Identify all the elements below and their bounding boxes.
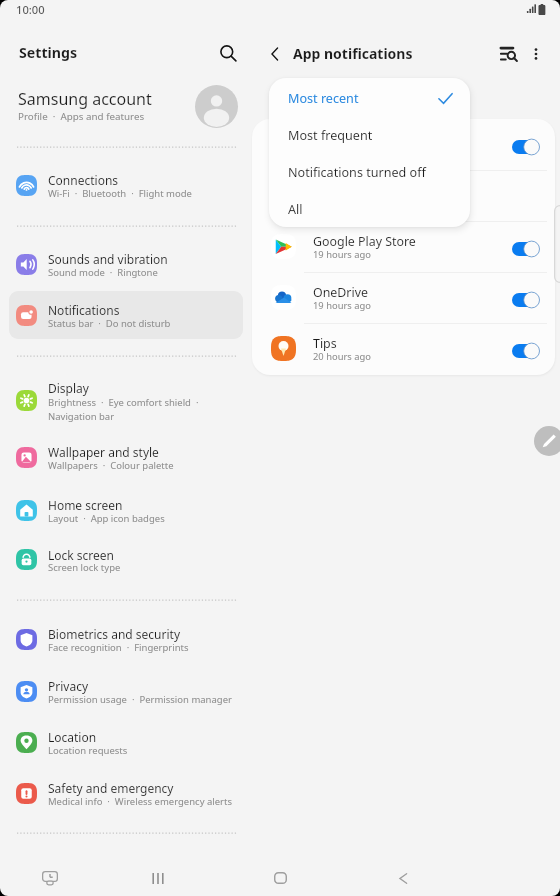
- staticText: Samsung account: [18, 88, 152, 110]
- button[interactable]: [9, 769, 243, 817]
- button[interactable]: [9, 433, 243, 481]
- button[interactable]: Camera: [252, 119, 555, 170]
- staticText: Face recognition · Fingerprints: [48, 641, 189, 654]
- staticText: Biometrics and security: [48, 626, 181, 642]
- staticText: All: [288, 201, 303, 218]
- button[interactable]: [9, 291, 243, 339]
- staticText: 10:00: [16, 2, 45, 17]
- button[interactable]: Toggle notifications: [512, 139, 540, 155]
- button[interactable]: [9, 718, 243, 766]
- button[interactable]: Toggle notifications: [512, 292, 540, 308]
- button[interactable]: [9, 536, 243, 584]
- staticText: Most recent: [288, 90, 359, 107]
- staticText: Connections: [48, 172, 119, 188]
- button[interactable]: Menu: [138, 858, 178, 896]
- staticText: Brightness · Eye comfort shield · Naviga…: [48, 396, 199, 423]
- button[interactable]: [9, 486, 243, 534]
- button[interactable]: [9, 615, 243, 663]
- button[interactable]: Messages: [252, 170, 555, 221]
- staticText: Layout · App icon badges: [48, 512, 165, 525]
- staticText: Notifications: [48, 302, 120, 318]
- staticText: Google Play Store: [313, 233, 416, 250]
- staticText: Medical info · Wireless emergency alerts: [48, 795, 233, 808]
- button[interactable]: Home: [260, 858, 300, 896]
- staticText: Privacy: [48, 678, 89, 694]
- button[interactable]: Most frequent: [269, 117, 470, 154]
- button[interactable]: [9, 379, 243, 435]
- staticText: 19 hours ago: [313, 248, 372, 261]
- button[interactable]: Back: [258, 37, 292, 71]
- staticText: Location requests: [48, 744, 128, 757]
- staticText: Status bar · Do not disturb: [48, 317, 171, 330]
- button[interactable]: Toggle notifications: [512, 343, 540, 359]
- staticText: Camera: [313, 131, 359, 148]
- staticText: Location: [48, 729, 97, 745]
- staticText: Lock screen: [48, 547, 115, 563]
- staticText: Sounds and vibration: [48, 251, 168, 267]
- staticText: OneDrive: [313, 284, 368, 301]
- button[interactable]: OneDrive: [252, 272, 555, 323]
- staticText: Wi-Fi · Bluetooth · Flight mode: [48, 187, 192, 200]
- button[interactable]: Recents: [30, 858, 70, 896]
- staticText: Home screen: [48, 497, 123, 513]
- staticText: 19 hours ago: [313, 299, 372, 312]
- staticText: Notifications turned off: [288, 164, 426, 181]
- staticText: App notifications: [293, 44, 413, 63]
- button[interactable]: Samsung account: [0, 82, 253, 132]
- staticText: Tips: [313, 335, 337, 352]
- button[interactable]: [9, 240, 243, 288]
- staticText: Screen lock type: [48, 561, 121, 574]
- button[interactable]: Notifications turned off: [269, 154, 470, 191]
- button[interactable]: Search settings: [492, 37, 526, 71]
- button[interactable]: Search: [210, 35, 246, 71]
- staticText: Settings: [19, 43, 78, 62]
- button[interactable]: Back: [383, 858, 423, 896]
- button[interactable]: Tips: [252, 323, 555, 374]
- button[interactable]: Most recent: [269, 80, 470, 117]
- button[interactable]: All: [269, 191, 470, 227]
- button[interactable]: Google Play Store: [252, 221, 555, 272]
- button[interactable]: [9, 667, 243, 715]
- button[interactable]: More options: [519, 37, 553, 71]
- staticText: Profile · Apps and features: [18, 110, 145, 123]
- staticText: Most frequent: [288, 127, 373, 144]
- button[interactable]: [9, 161, 243, 209]
- button[interactable]: Edit: [534, 426, 560, 456]
- staticText: Display: [48, 380, 89, 396]
- staticText: Sound mode · Ringtone: [48, 266, 158, 279]
- staticText: Permission usage · Permission manager: [48, 693, 232, 706]
- staticText: 20 hours ago: [313, 350, 372, 363]
- button[interactable]: Toggle notifications: [512, 241, 540, 257]
- staticText: Safety and emergency: [48, 780, 174, 796]
- staticText: Wallpapers · Colour palette: [48, 459, 174, 472]
- staticText: Wallpaper and style: [48, 444, 159, 460]
